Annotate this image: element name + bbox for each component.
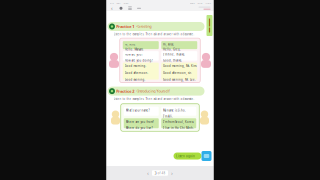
button[interactable]: Listen again xyxy=(173,152,201,159)
button[interactable]: Good morning, Ms. Kim. xyxy=(161,63,197,80)
staticText: Good morning, Ms. Kim. xyxy=(163,64,197,68)
staticText: I'm from Seoul, Korea. xyxy=(163,120,194,124)
button[interactable]: I'm fine. Thanks. xyxy=(161,51,197,61)
staticText: Good afternoon, sir. xyxy=(163,71,192,75)
staticText: Hello, Maryam. xyxy=(124,48,143,51)
staticText: Practice 2 xyxy=(116,88,134,94)
staticText: of 48 xyxy=(157,171,165,175)
staticText: • Introducing Yourself xyxy=(136,89,170,93)
staticText: Good, thanks. xyxy=(163,59,182,62)
staticText: • Greeting xyxy=(136,24,152,29)
button[interactable]: What's your name? xyxy=(124,107,159,116)
button[interactable]: Hi, Alex. xyxy=(161,41,197,49)
staticText: Hello, Greg. xyxy=(163,48,181,51)
button[interactable]: Where are you from? xyxy=(124,118,159,128)
staticText: 3 xyxy=(154,170,156,176)
button[interactable]: Outline xyxy=(127,6,132,11)
staticText: Hi, Kim. xyxy=(124,43,135,46)
button[interactable]: My notes xyxy=(206,15,212,36)
button[interactable]: Hi, Kim. xyxy=(123,41,159,49)
staticText: What's your name? xyxy=(125,109,149,112)
staticText: How are you? xyxy=(124,53,142,56)
button[interactable]: How are you? xyxy=(123,51,159,61)
button[interactable]: My name is Ji-ho. xyxy=(161,107,196,116)
staticText: My name is Ji-ho. xyxy=(163,109,186,112)
staticText: File Edit View xyxy=(109,1,128,5)
staticText: Practice 1 xyxy=(116,24,134,29)
staticText: Listen again xyxy=(176,154,195,158)
staticText: ‹ xyxy=(147,169,149,177)
staticText: ‹ xyxy=(111,5,113,12)
button[interactable]: Previous page xyxy=(145,170,150,176)
staticText: Share Print Help xyxy=(189,1,210,5)
staticText: Listen to the examples. Then ask and ans… xyxy=(113,32,194,36)
button[interactable]: Good morning. xyxy=(123,63,159,80)
staticText: Good morning. xyxy=(124,64,146,68)
staticText: Hi, Alex. xyxy=(163,43,174,46)
button[interactable]: Link xyxy=(136,6,141,11)
staticText: Where do you live? xyxy=(125,126,152,130)
button[interactable]: I'm from Seoul, Korea. xyxy=(161,118,196,128)
staticText: I'm fine. Thanks. xyxy=(163,53,185,56)
button[interactable]: Open activity xyxy=(201,151,211,161)
staticText: How are you doing? xyxy=(124,59,152,62)
staticText: Where are you from? xyxy=(125,120,153,124)
staticText: Listen to the examples. Then ask and ans… xyxy=(113,97,194,101)
staticText: Good evening. xyxy=(124,78,145,81)
button[interactable]: 3 xyxy=(152,170,168,176)
staticText: I'm Ali. xyxy=(163,115,173,118)
staticText: I live in Ho Chi Minh. xyxy=(163,126,194,130)
button[interactable]: Highlight xyxy=(118,6,123,11)
staticText: Good afternoon. xyxy=(124,71,148,75)
staticText: › xyxy=(171,169,173,177)
button[interactable]: Back xyxy=(109,6,114,11)
button[interactable]: Next page xyxy=(169,170,174,176)
button[interactable]: Account xyxy=(198,6,210,11)
staticText: Good evening, Mr. Lee. xyxy=(163,78,196,81)
